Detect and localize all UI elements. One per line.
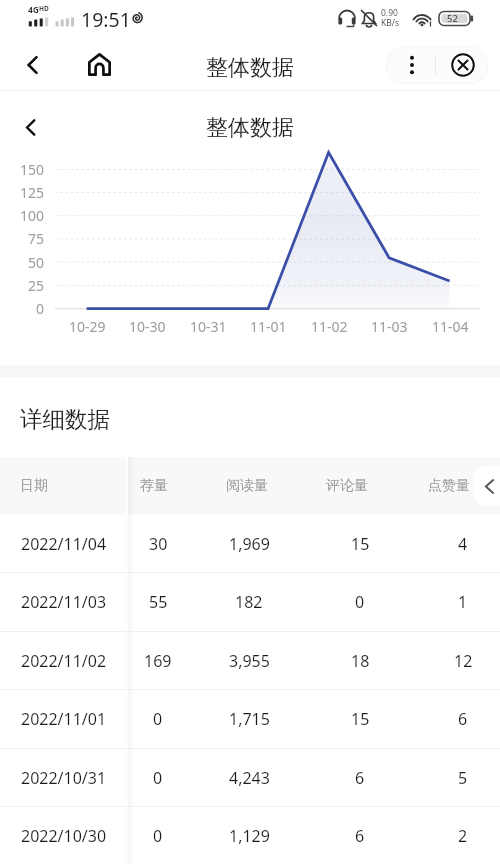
staticText: 50: [28, 253, 45, 272]
staticText: 18: [351, 650, 370, 672]
button[interactable]: More options: [386, 46, 437, 84]
staticText: 整体数据: [206, 54, 294, 82]
staticText: 0.90: [381, 7, 398, 19]
staticText: 1,715: [229, 708, 270, 730]
staticText: 3,955: [229, 650, 270, 672]
staticText: 2022/10/31: [21, 767, 107, 789]
button[interactable]: Home: [74, 38, 124, 91]
staticText: 1,969: [229, 533, 270, 555]
button[interactable]: 2022/11/04: [0, 515, 500, 572]
staticText: 2022/11/01: [21, 708, 107, 730]
staticText: 6: [458, 708, 468, 730]
button[interactable]: Back: [10, 107, 50, 147]
staticText: 6: [355, 825, 365, 847]
staticText: HD: [39, 4, 49, 13]
staticText: 阅读量: [226, 477, 268, 495]
staticText: 30: [149, 533, 168, 555]
staticText: 6: [355, 767, 365, 789]
staticText: 150: [20, 160, 45, 179]
staticText: 0: [153, 708, 163, 730]
staticText: 125: [20, 183, 45, 202]
staticText: 详细数据: [20, 405, 110, 433]
staticText: 1: [458, 591, 468, 613]
staticText: 19:51: [81, 6, 131, 33]
staticText: 10-30: [129, 317, 166, 336]
staticText: 10-31: [190, 317, 227, 336]
staticText: 10-29: [69, 317, 106, 336]
staticText: 11-03: [371, 317, 408, 336]
button[interactable]: Scroll columns: [473, 466, 500, 506]
staticText: 11-04: [432, 317, 469, 336]
staticText: 评论量: [326, 477, 368, 495]
staticText: 182: [235, 591, 263, 613]
staticText: 15: [351, 533, 370, 555]
staticText: 12: [454, 650, 473, 672]
staticText: 整体数据: [206, 114, 294, 142]
staticText: 2022/11/02: [21, 650, 107, 672]
staticText: 11-02: [311, 317, 348, 336]
staticText: 5: [458, 767, 468, 789]
staticText: 点赞量: [428, 477, 470, 495]
staticText: 4: [458, 533, 468, 555]
staticText: 11-01: [250, 317, 287, 336]
staticText: 2022/10/30: [21, 825, 107, 847]
button[interactable]: 2022/11/02: [0, 632, 500, 689]
staticText: 荐量: [140, 477, 168, 495]
button[interactable]: Back: [8, 38, 58, 91]
staticText: 0: [355, 591, 365, 613]
staticText: 75: [28, 229, 45, 248]
button[interactable]: 2022/10/31: [0, 749, 500, 806]
staticText: 15: [351, 708, 370, 730]
staticText: 25: [28, 276, 45, 295]
staticText: 2022/11/04: [21, 533, 107, 555]
button[interactable]: Close: [437, 46, 488, 84]
staticText: 2: [458, 825, 468, 847]
staticText: 4,243: [229, 767, 270, 789]
staticText: 55: [149, 591, 168, 613]
staticText: 0: [153, 767, 163, 789]
staticText: 日期: [20, 477, 48, 495]
staticText: 4G: [28, 4, 40, 16]
button[interactable]: 2022/10/30: [0, 807, 500, 865]
button[interactable]: 2022/11/01: [0, 690, 500, 748]
staticText: 52: [447, 12, 458, 25]
staticText: 100: [20, 206, 45, 225]
staticText: 1,129: [229, 825, 270, 847]
staticText: 2022/11/03: [21, 591, 107, 613]
button[interactable]: 2022/11/03: [0, 573, 500, 631]
staticText: KB/s: [381, 17, 400, 29]
staticText: 0: [36, 299, 45, 318]
staticText: 169: [144, 650, 172, 672]
staticText: 0: [153, 825, 163, 847]
